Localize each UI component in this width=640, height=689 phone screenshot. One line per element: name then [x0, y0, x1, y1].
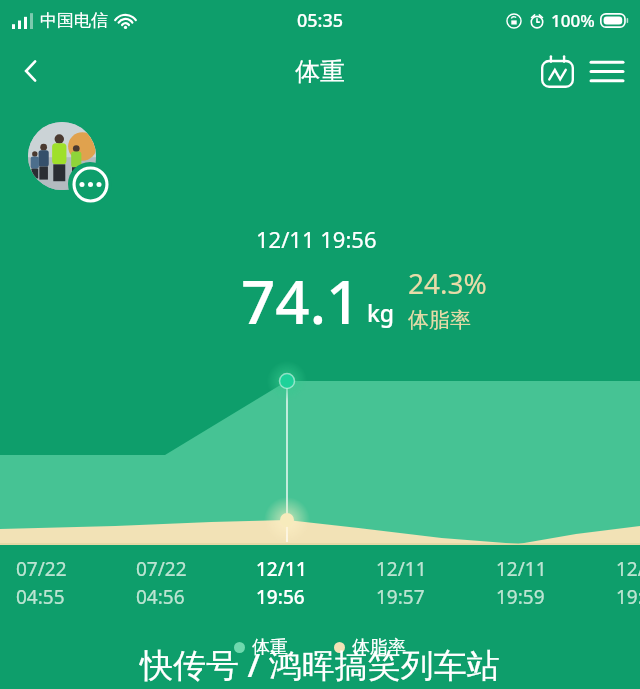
button[interactable]: 体脂率 [334, 636, 406, 659]
button[interactable]: Back [6, 46, 56, 96]
staticText: 100% [551, 9, 595, 32]
staticText: 19:59 [496, 584, 545, 610]
button[interactable]: More options [68, 162, 112, 206]
staticText: kg [367, 297, 395, 328]
staticText: 12/11 [376, 556, 427, 582]
staticText: 74.1 [241, 260, 361, 336]
staticText: 19:56 [256, 584, 305, 610]
staticText: 12/11 [496, 556, 547, 582]
staticText: 04:55 [16, 584, 65, 610]
staticText: 中国电信 [40, 10, 108, 31]
button[interactable]: History chart [532, 46, 582, 96]
staticText: 12/11 [256, 556, 307, 582]
button[interactable]: Menu [582, 46, 632, 96]
staticText: 体重 [295, 56, 345, 87]
button[interactable]: Profile photo [28, 122, 96, 190]
staticText: 12/11 19:56 [256, 224, 377, 254]
staticText: 24.3% [408, 264, 487, 302]
staticText: 19:59 [616, 584, 640, 610]
button[interactable]: 体重 [234, 636, 288, 659]
staticText: 体脂率 [408, 307, 471, 333]
staticText: 07/22 [16, 556, 67, 582]
staticText: 12/11 [616, 556, 640, 582]
staticText: 04:56 [136, 584, 185, 610]
staticText: 快传号 / 鸿晖搞笑列车站 [140, 642, 500, 687]
staticText: 体脂率 [352, 636, 406, 659]
staticText: 05:35 [297, 8, 344, 33]
staticText: 体重 [252, 636, 288, 659]
staticText: 07/22 [136, 556, 187, 582]
staticText: 19:57 [376, 584, 425, 610]
